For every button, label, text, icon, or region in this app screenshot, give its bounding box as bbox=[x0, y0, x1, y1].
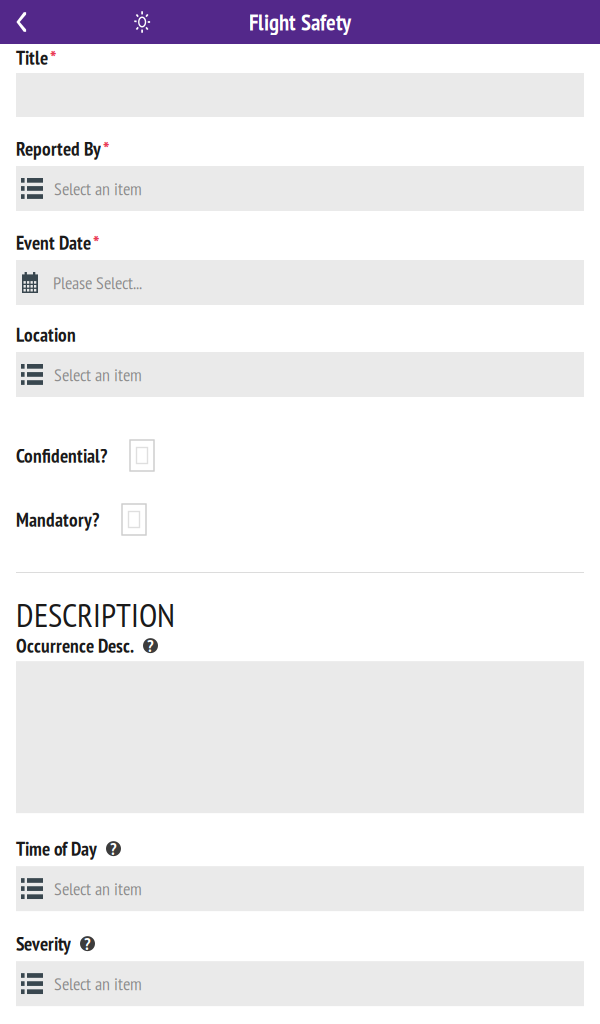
staticText: Confidential? bbox=[16, 443, 107, 468]
staticText: Location bbox=[16, 322, 76, 347]
staticText: Mandatory? bbox=[16, 507, 99, 532]
button[interactable]: Please Select... bbox=[16, 260, 584, 305]
staticText: Severity bbox=[16, 931, 71, 956]
button[interactable]: Mandatory? bbox=[16, 504, 584, 535]
button[interactable]: Select an item bbox=[16, 166, 584, 211]
button[interactable]: Confidential? bbox=[16, 440, 584, 471]
staticText: ? bbox=[147, 634, 154, 657]
staticText: Title bbox=[16, 45, 48, 70]
staticText: Select an item bbox=[54, 363, 142, 386]
button[interactable]: Brightness bbox=[120, 0, 164, 44]
button[interactable]: Select an item bbox=[16, 961, 584, 1006]
staticText: Time of Day bbox=[16, 836, 97, 861]
button[interactable]: Back bbox=[0, 0, 42, 44]
staticText: * bbox=[93, 230, 99, 255]
staticText: Select an item bbox=[54, 177, 142, 200]
staticText: Select an item bbox=[54, 972, 142, 995]
staticText: DESCRIPTION bbox=[16, 593, 175, 636]
staticText: Select an item bbox=[54, 877, 142, 900]
staticText: Flight Safety bbox=[249, 7, 351, 37]
button[interactable]: Select an item bbox=[16, 866, 584, 911]
staticText: Occurrence Desc. bbox=[16, 633, 134, 658]
staticText: * bbox=[103, 136, 109, 161]
staticText: Please Select... bbox=[53, 271, 142, 294]
staticText: Reported By bbox=[16, 136, 101, 161]
staticText: Event Date bbox=[16, 230, 91, 255]
staticText: ? bbox=[110, 837, 117, 860]
staticText: ? bbox=[84, 932, 91, 955]
staticText: * bbox=[50, 45, 56, 70]
button[interactable]: Select an item bbox=[16, 352, 584, 397]
